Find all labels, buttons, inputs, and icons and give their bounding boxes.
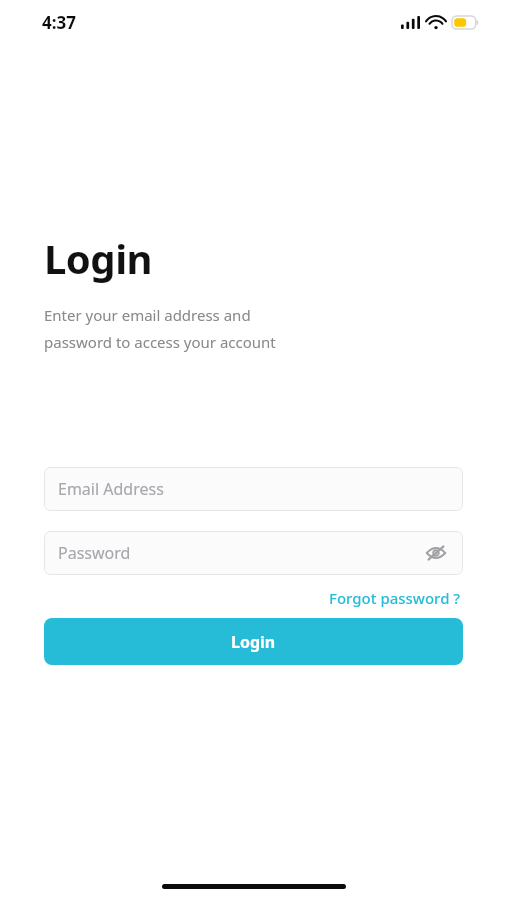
button[interactable]: Password (44, 531, 463, 575)
button[interactable]: Login (44, 618, 463, 665)
button[interactable]: Show password (423, 540, 449, 566)
button[interactable]: Email Address (44, 467, 463, 511)
button[interactable]: Forgot password ? (327, 586, 463, 610)
staticText: Email Address (58, 478, 164, 500)
staticText: Enter your email address and (44, 305, 251, 325)
staticText: 4:37 (42, 11, 76, 34)
staticText: Password (58, 542, 131, 564)
staticText: password to access your account (44, 332, 276, 352)
staticText: Login (231, 631, 276, 653)
staticText: Forgot password ? (329, 588, 461, 608)
staticText: Login (44, 231, 153, 285)
